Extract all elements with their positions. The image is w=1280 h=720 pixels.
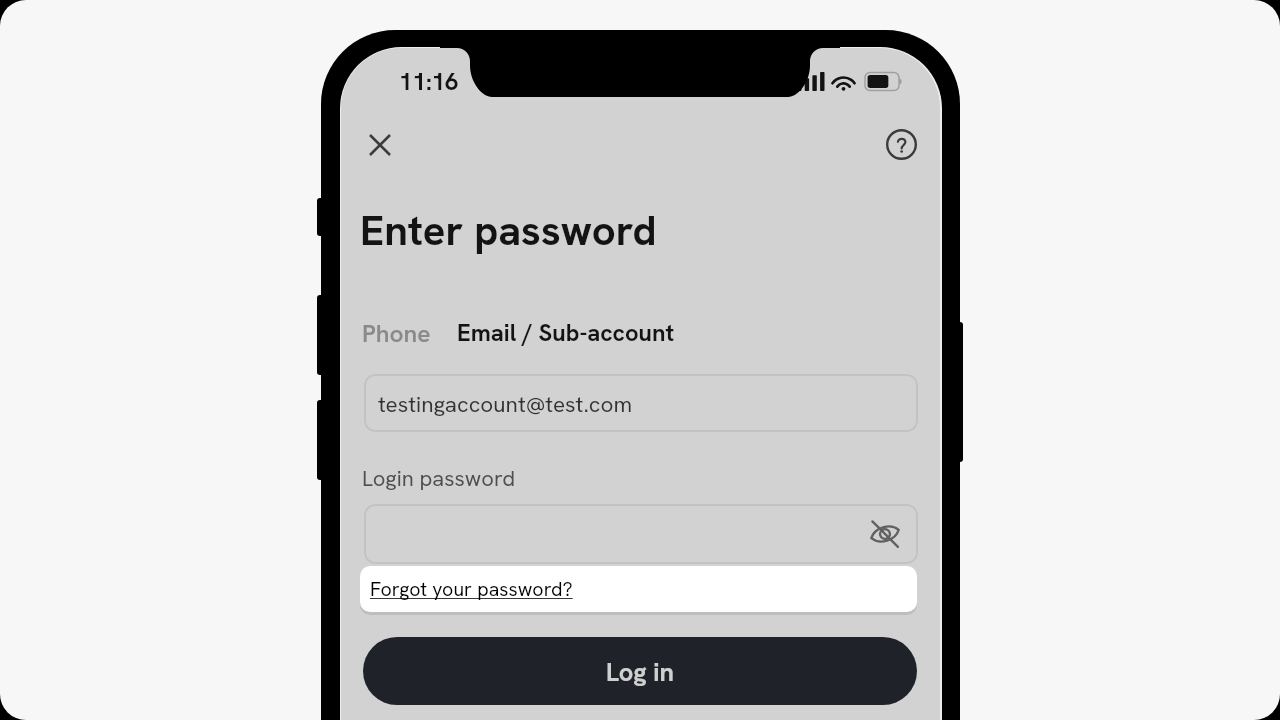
staticText: Login password bbox=[362, 464, 516, 493]
staticText: Email / Sub-account bbox=[457, 317, 675, 348]
staticText: Enter password bbox=[360, 203, 657, 258]
button[interactable]: testingaccount@test.com bbox=[364, 374, 918, 432]
staticText: Phone bbox=[362, 317, 431, 349]
button[interactable]: Email / Sub-account bbox=[449, 307, 683, 358]
button[interactable]: Show password bbox=[865, 514, 905, 554]
button[interactable]: Log in bbox=[363, 637, 917, 705]
button[interactable]: Close bbox=[350, 115, 410, 175]
button[interactable]: Phone bbox=[354, 307, 439, 359]
staticText: Forgot your password? bbox=[370, 576, 573, 602]
staticText: testingaccount@test.com bbox=[378, 389, 633, 418]
staticText: 11:16 bbox=[399, 66, 459, 97]
button[interactable]: Forgot your password? bbox=[360, 566, 917, 612]
button[interactable]: Help bbox=[871, 114, 931, 174]
staticText: Log in bbox=[606, 655, 674, 688]
button[interactable]: Show password bbox=[364, 504, 918, 564]
